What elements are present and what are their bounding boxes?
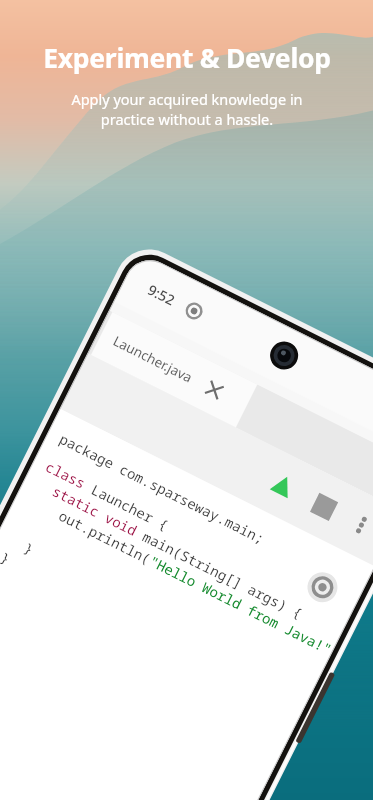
staticText: Experiment & Develop [43,40,331,76]
staticText: out.println( [26,491,155,568]
button[interactable]: Launcher.java [91,312,257,428]
staticText: package com.sparseway.main; [56,429,268,548]
staticText: 9:52 [145,280,178,309]
staticText: } [0,547,14,568]
button[interactable]: More options [339,502,373,548]
staticText: static void [34,474,148,544]
staticText: class [43,457,97,497]
button[interactable]: Stop [301,483,347,529]
staticText: main(String[] args) { [140,527,306,623]
button[interactable]: Close tab [197,372,232,407]
staticText: "Hello World from Java!" [146,551,335,659]
staticText: Launcher { [88,480,172,534]
button[interactable]: Preview [301,566,344,609]
staticText: ); [316,642,337,682]
staticText: } [6,530,38,559]
staticText: Apply your acquired knowledge in practic… [71,89,303,130]
staticText: Launcher.java [110,332,196,387]
button[interactable]: Run [260,463,305,508]
